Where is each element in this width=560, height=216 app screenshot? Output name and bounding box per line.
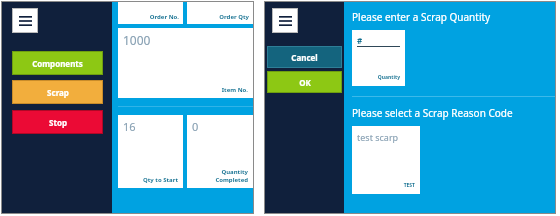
staticText: Order Qty bbox=[219, 13, 249, 21]
staticText: 16 bbox=[123, 119, 136, 134]
staticText: Stop bbox=[49, 117, 67, 128]
button[interactable]: Scrap bbox=[12, 80, 103, 104]
staticText: Please select a Scrap Reason Code bbox=[352, 106, 513, 120]
staticText: Order No. bbox=[149, 13, 179, 21]
staticText: # bbox=[357, 35, 363, 46]
staticText: test scarp bbox=[357, 131, 399, 143]
button[interactable]: 1000 bbox=[118, 28, 253, 98]
staticText: Quantity Completed bbox=[192, 168, 248, 184]
staticText: Scrap bbox=[47, 87, 69, 98]
button[interactable]: test scarp bbox=[352, 126, 420, 194]
button[interactable]: 0 bbox=[187, 115, 253, 188]
staticText: Cancel bbox=[291, 52, 318, 63]
staticText: OK bbox=[299, 77, 311, 88]
button[interactable]: Components bbox=[12, 51, 103, 75]
staticText: Quantity bbox=[357, 74, 400, 81]
button[interactable]: Cancel bbox=[267, 46, 342, 68]
button[interactable]: Menu bbox=[12, 8, 38, 33]
button[interactable]: Stop bbox=[12, 110, 103, 134]
staticText: 1000 bbox=[123, 32, 151, 48]
button[interactable]: 16 bbox=[118, 115, 183, 188]
button[interactable]: Menu bbox=[272, 8, 298, 33]
staticText: Components bbox=[32, 58, 83, 69]
staticText: TEST bbox=[357, 182, 415, 189]
staticText: Qty to Start bbox=[123, 176, 178, 184]
button[interactable]: # bbox=[352, 30, 405, 86]
button[interactable]: OK bbox=[267, 71, 342, 93]
button[interactable]: Order No. bbox=[118, 2, 183, 24]
button[interactable]: Order Qty bbox=[187, 2, 253, 24]
staticText: Please enter a Scrap Quantity bbox=[352, 10, 491, 24]
staticText: Item No. bbox=[123, 86, 248, 94]
staticText: 0 bbox=[192, 119, 199, 134]
